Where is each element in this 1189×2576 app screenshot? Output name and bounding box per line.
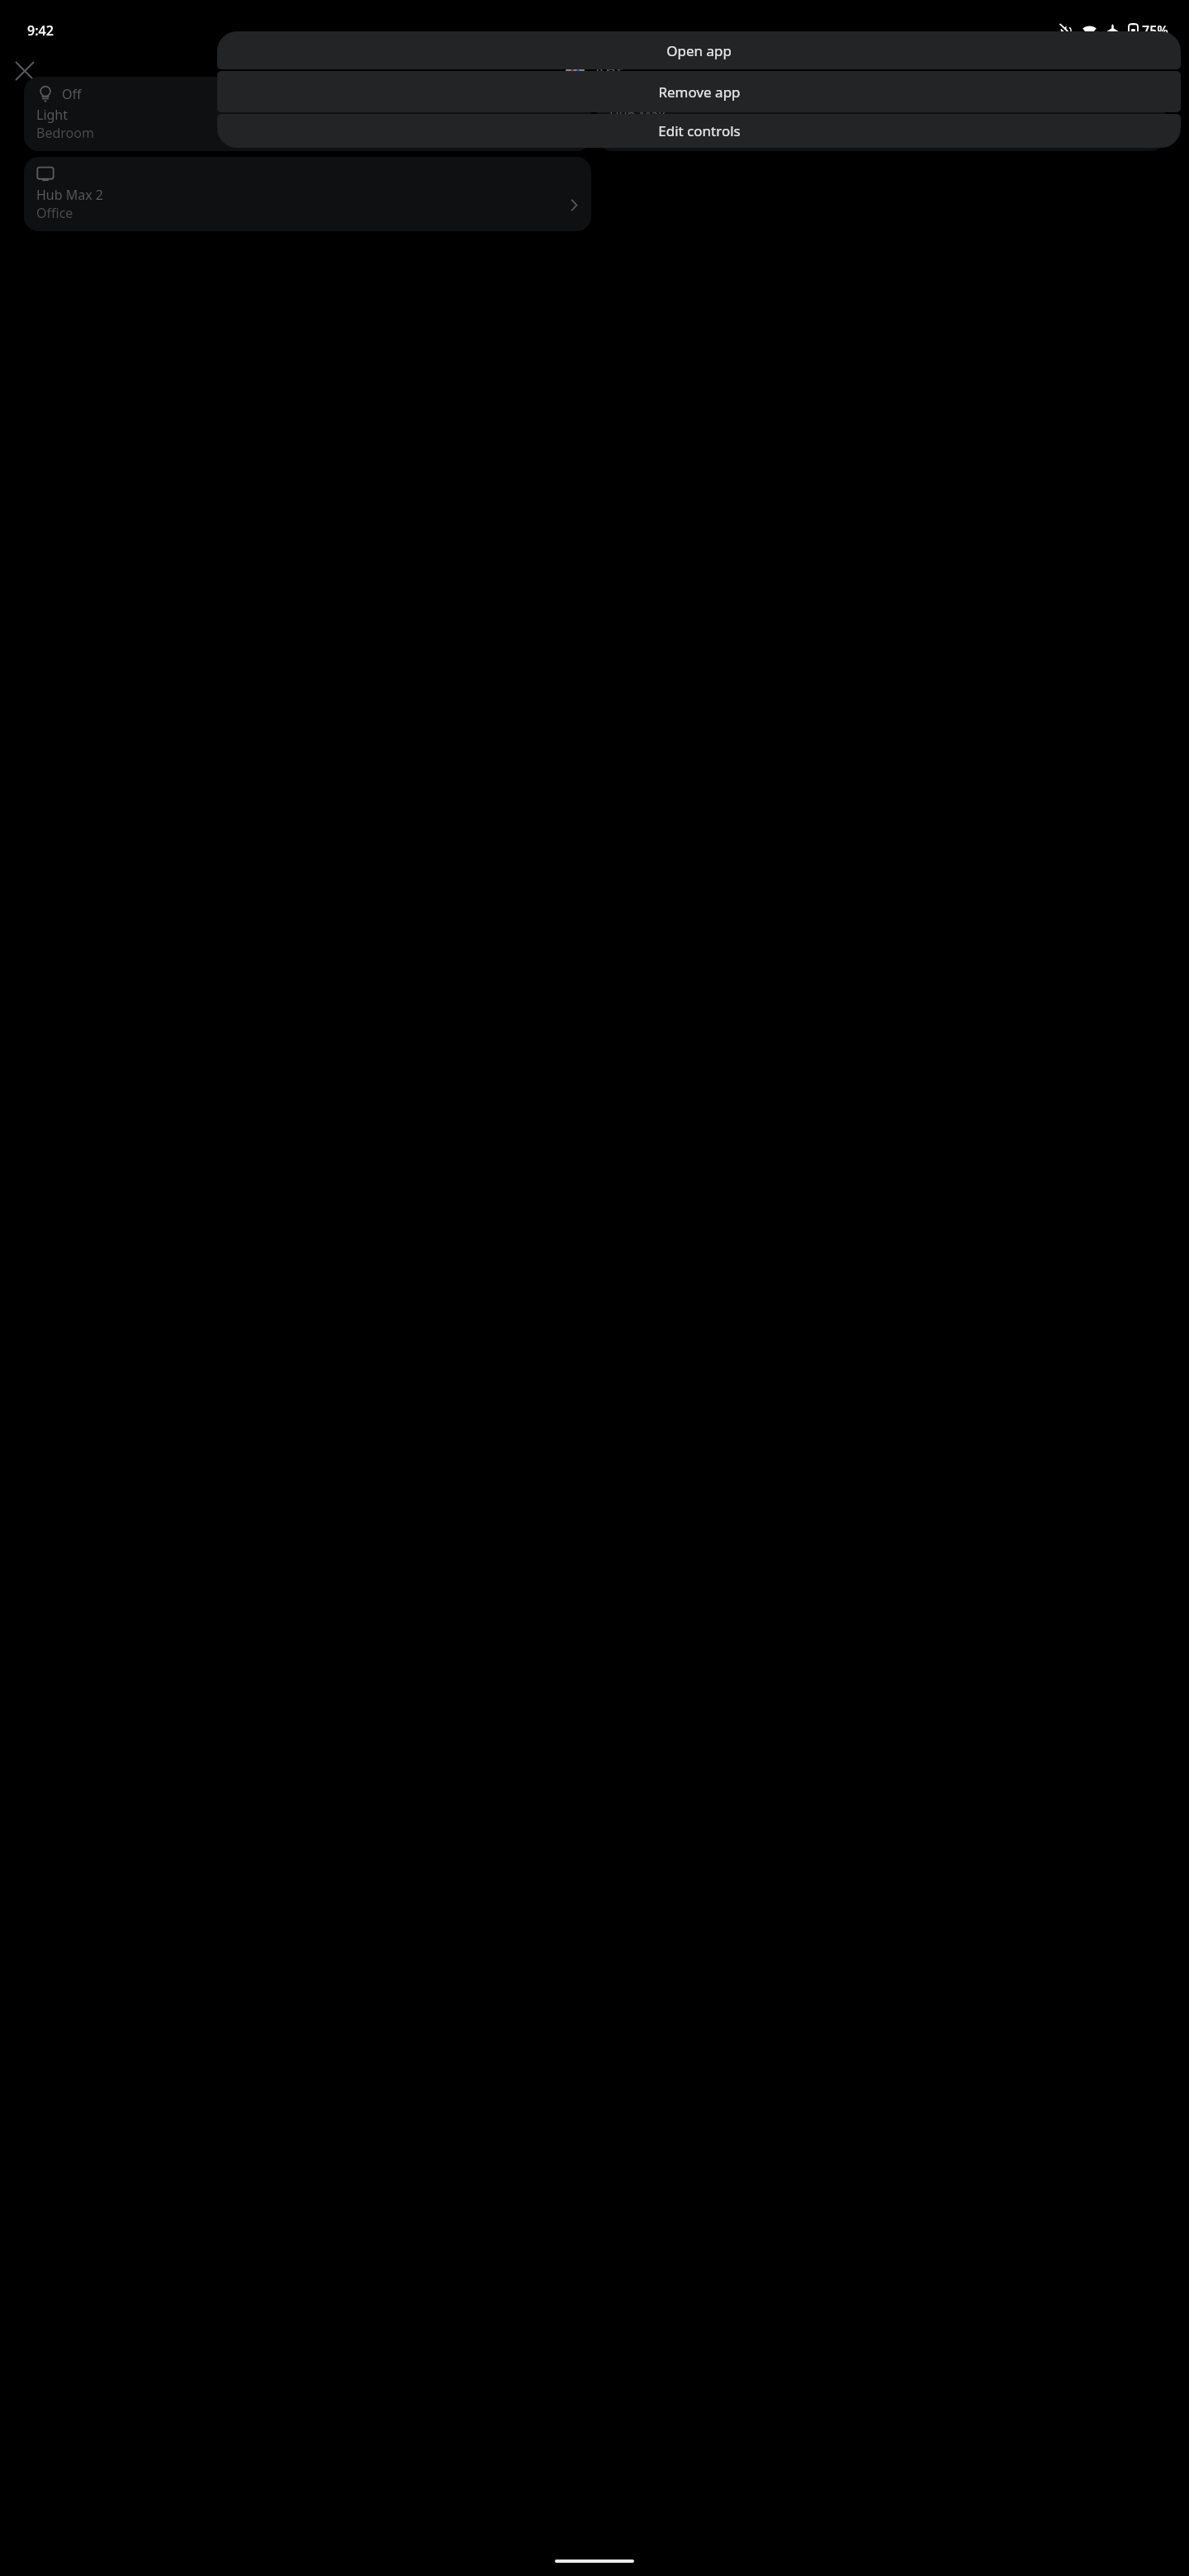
staticText: Remove app xyxy=(658,83,741,102)
staticText: Hub Max 2 xyxy=(36,186,104,204)
staticText: Open app xyxy=(666,41,732,60)
staticText: Edit controls xyxy=(658,121,741,140)
staticText: Hub Max xyxy=(609,106,666,124)
staticText: Bedroom xyxy=(36,124,94,142)
staticText: Living Room xyxy=(609,124,686,142)
staticText: 75% xyxy=(1142,21,1168,40)
staticText: Off xyxy=(62,85,82,103)
button[interactable]: Hub Max 2 xyxy=(24,157,591,231)
button[interactable]: Off xyxy=(24,77,591,151)
staticText: Light xyxy=(36,106,69,124)
button[interactable]: Remove app xyxy=(217,71,1181,112)
button[interactable]: Hub Max xyxy=(597,77,1165,151)
button[interactable]: Open app xyxy=(217,31,1181,69)
staticText: Apt xyxy=(594,59,623,83)
button[interactable]: Edit controls xyxy=(217,114,1181,148)
staticText: 9:42 xyxy=(27,21,54,40)
staticText: Office xyxy=(36,204,73,222)
button[interactable]: Close xyxy=(2,49,47,93)
